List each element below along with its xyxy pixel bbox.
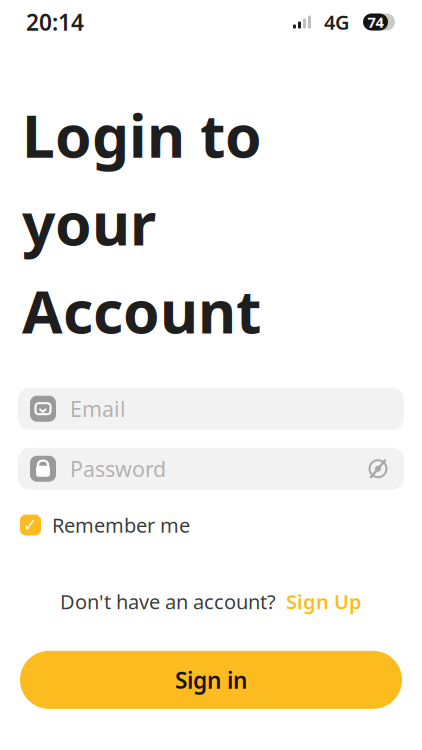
staticText: ✓: [23, 515, 38, 535]
staticText: ⌄: [35, 397, 50, 417]
button[interactable]: Show password: [366, 457, 390, 481]
staticText: 4G: [324, 9, 350, 35]
staticText: 20:14: [26, 7, 84, 37]
staticText: Login to your Account: [22, 96, 262, 350]
staticText: 74: [367, 12, 383, 32]
staticText: Password: [70, 455, 166, 483]
button[interactable]: ✓: [20, 508, 190, 542]
button[interactable]: Sign Up: [276, 584, 362, 619]
staticText: Don't have an account?: [60, 588, 276, 615]
button[interactable]: Sign in: [20, 651, 402, 709]
staticText: Sign Up: [286, 588, 362, 615]
staticText: Remember me: [52, 512, 190, 538]
staticText: Email: [70, 395, 126, 423]
staticText: Sign in: [175, 665, 247, 695]
